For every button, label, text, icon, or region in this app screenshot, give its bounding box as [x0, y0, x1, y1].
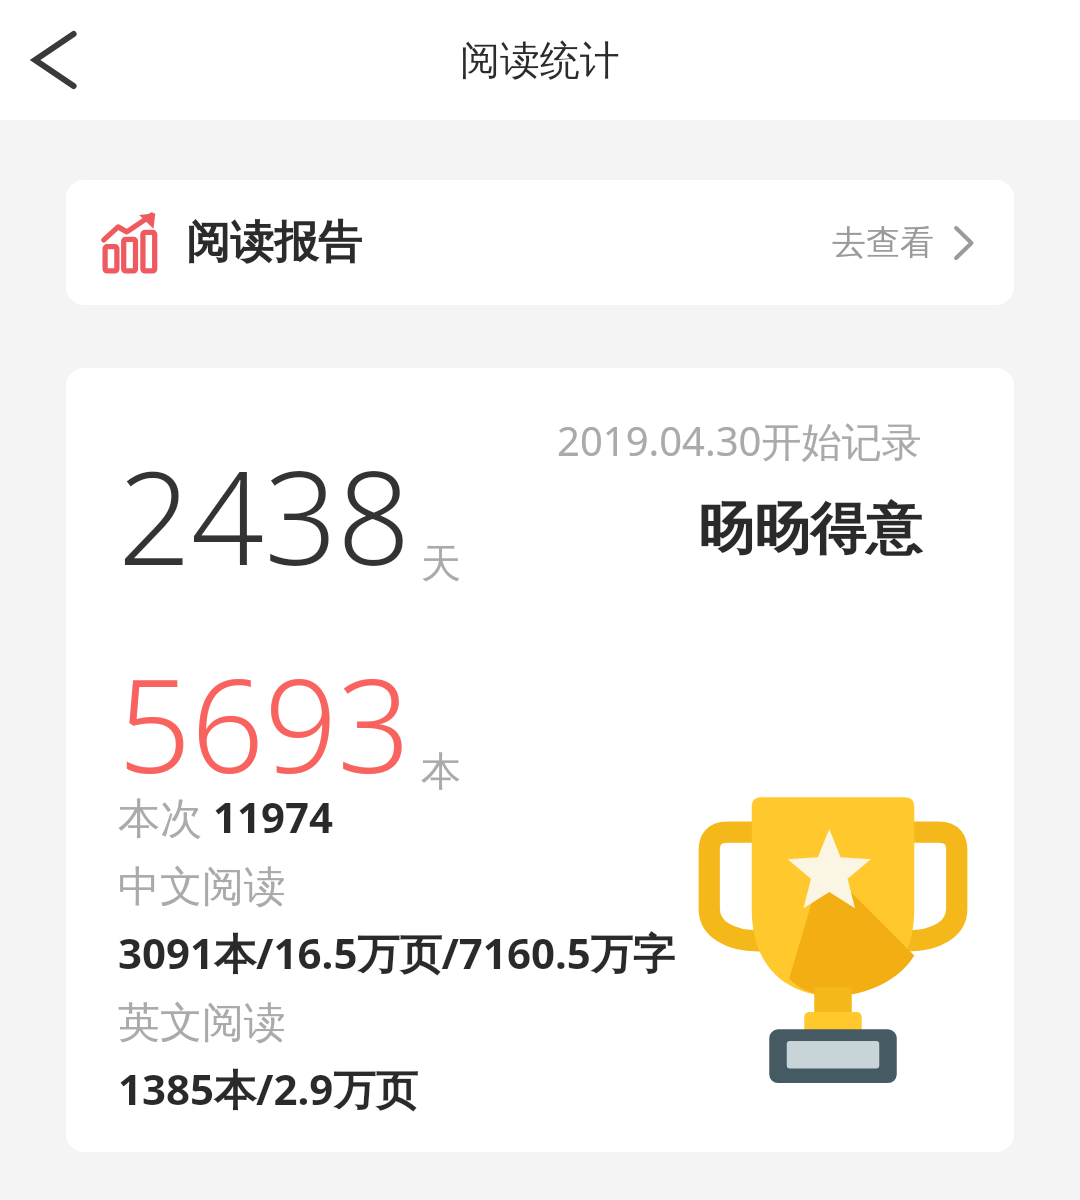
staticText: 3091本/16.5万页/7160.5万字: [118, 924, 675, 981]
staticText: 本次: [118, 788, 213, 845]
staticText: 2438: [118, 428, 411, 602]
button[interactable]: 2019.04.30开始记录: [66, 368, 1014, 1152]
button[interactable]: 阅读报告: [66, 180, 1014, 305]
staticText: 本: [421, 746, 461, 796]
staticText: 1385本/2.9万页: [118, 1060, 418, 1117]
other: Trophy: [708, 793, 958, 1083]
staticText: 去查看: [832, 221, 934, 264]
staticText: 英文阅读: [118, 997, 286, 1050]
staticText: 2019.04.30开始记录: [557, 413, 922, 468]
staticText: 5693: [118, 636, 411, 810]
staticText: 阅读统计: [460, 35, 620, 85]
staticText: 11974: [213, 788, 334, 845]
staticText: 旸旸得意: [698, 494, 922, 565]
button[interactable]: Back: [10, 20, 90, 100]
staticText: 天: [421, 538, 461, 588]
staticText: 中文阅读: [118, 861, 286, 914]
staticText: 阅读报告: [186, 215, 362, 270]
